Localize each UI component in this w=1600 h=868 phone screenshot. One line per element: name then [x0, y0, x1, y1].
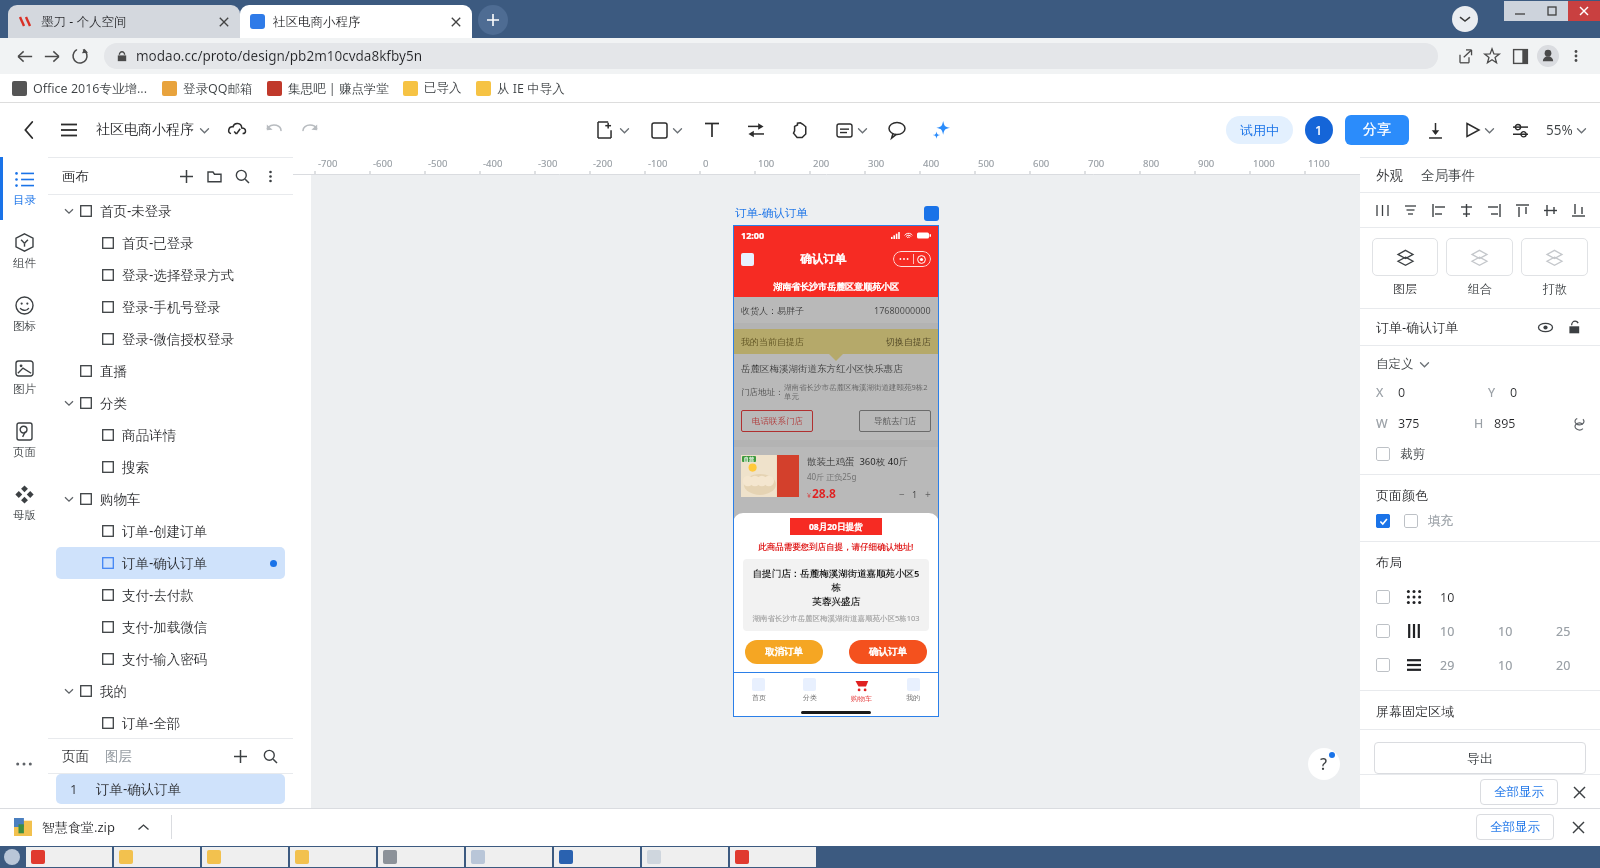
- button[interactable]: 电话联系门店: [741, 410, 813, 432]
- button[interactable]: Tab search: [1452, 6, 1478, 32]
- button[interactable]: 全部显示: [1494, 779, 1544, 805]
- button[interactable]: Window control: [1536, 1, 1568, 21]
- button[interactable]: Tool: [698, 116, 726, 144]
- button[interactable]: Close: [1570, 783, 1588, 801]
- button[interactable]: Align 2: [1428, 200, 1448, 220]
- button[interactable]: 分类: [784, 673, 835, 707]
- button[interactable]: 支付-输入密码: [56, 643, 285, 675]
- button[interactable]: 订单-创建订单: [56, 515, 285, 547]
- button[interactable]: 已导入: [403, 80, 462, 96]
- button[interactable]: 全部显示: [1490, 814, 1540, 840]
- button[interactable]: Office 2016专业增...: [12, 80, 148, 97]
- button[interactable]: 直播: [56, 355, 285, 387]
- button[interactable]: Checkbox: [1404, 514, 1418, 528]
- button[interactable]: Tool: [786, 116, 814, 144]
- button[interactable]: 登录-手机号登录: [56, 291, 285, 323]
- button[interactable]: 分类: [56, 387, 285, 419]
- button[interactable]: 图标: [0, 283, 48, 346]
- button[interactable]: 登录-选择登录方式: [56, 259, 285, 291]
- button[interactable]: Menu: [898, 251, 926, 267]
- button[interactable]: 登录QQ邮箱: [162, 80, 253, 97]
- button[interactable]: 墨刀 - 个人空间: [8, 5, 240, 38]
- button[interactable]: Tool: [830, 116, 858, 144]
- button[interactable]: Tool: [592, 116, 620, 144]
- button[interactable]: Close downloads: [1568, 817, 1588, 837]
- button[interactable]: Settings: [1508, 118, 1532, 142]
- button[interactable]: Back: [10, 42, 38, 70]
- button[interactable]: 导出: [1374, 742, 1586, 774]
- button[interactable]: 购物车: [56, 483, 285, 515]
- button[interactable]: [1521, 238, 1588, 276]
- button[interactable]: Reload: [66, 42, 94, 70]
- button[interactable]: 从 IE 中导入: [476, 80, 565, 97]
- button[interactable]: Add page: [231, 747, 249, 765]
- button[interactable]: Tool: [927, 116, 955, 144]
- button[interactable]: Align 0: [1372, 200, 1392, 220]
- button[interactable]: 登录-微信授权登录: [56, 323, 285, 355]
- button[interactable]: More: [261, 167, 279, 185]
- button[interactable]: Tool: [883, 116, 911, 144]
- button[interactable]: 首页: [733, 673, 784, 707]
- button[interactable]: 1: [70, 774, 271, 804]
- button[interactable]: New folder: [205, 167, 223, 185]
- button[interactable]: Align 7: [1568, 200, 1588, 220]
- button[interactable]: Visibility: [1536, 318, 1554, 336]
- button[interactable]: 订单-确认订单: [56, 547, 285, 579]
- button[interactable]: 我的: [887, 673, 939, 707]
- button[interactable]: Back: [14, 115, 44, 145]
- button[interactable]: Redo: [299, 119, 321, 141]
- button[interactable]: New tab: [478, 5, 508, 35]
- button[interactable]: Window control: [1568, 1, 1600, 21]
- button[interactable]: 购物车: [835, 673, 887, 707]
- button[interactable]: Checkbox: [1376, 447, 1390, 461]
- button[interactable]: 社区电商小程序: [240, 5, 472, 38]
- button[interactable]: Add: [177, 167, 195, 185]
- button[interactable]: 首页-已登录: [56, 227, 285, 259]
- button[interactable]: Link: [741, 253, 754, 266]
- button[interactable]: Search: [233, 167, 251, 185]
- button[interactable]: Checkbox: [1376, 514, 1390, 528]
- button[interactable]: 确认订单: [849, 640, 927, 664]
- button[interactable]: 试用中: [1240, 116, 1279, 144]
- button[interactable]: Align 4: [1484, 200, 1504, 220]
- button[interactable]: Align 5: [1512, 200, 1532, 220]
- button[interactable]: Share: [1450, 42, 1478, 70]
- button[interactable]: 支付-加载微信: [56, 611, 285, 643]
- button[interactable]: Bookmark: [1478, 42, 1506, 70]
- button[interactable]: Align 1: [1400, 200, 1420, 220]
- button[interactable]: Help: [1308, 748, 1340, 780]
- button[interactable]: 图片: [0, 346, 48, 409]
- button[interactable]: Undo: [263, 119, 285, 141]
- button[interactable]: 商品详情: [56, 419, 285, 451]
- button[interactable]: Align 6: [1540, 200, 1560, 220]
- button[interactable]: Profile: [1534, 42, 1562, 70]
- button[interactable]: 首页-未登录: [56, 195, 285, 227]
- button[interactable]: Download: [1423, 118, 1447, 142]
- button[interactable]: 取消订单: [745, 640, 823, 664]
- button[interactable]: Checkbox: [1376, 658, 1390, 672]
- button[interactable]: Lock: [1566, 318, 1584, 336]
- button[interactable]: 我的: [56, 675, 285, 707]
- button[interactable]: [1372, 238, 1438, 276]
- button[interactable]: Checkbox: [1376, 590, 1390, 604]
- button[interactable]: 页面: [0, 409, 48, 472]
- button[interactable]: 订单-全部: [56, 707, 285, 738]
- button[interactable]: Checkbox: [1376, 624, 1390, 638]
- button[interactable]: [1446, 238, 1513, 276]
- button[interactable]: 导航去门店: [859, 410, 931, 432]
- button[interactable]: Tool: [645, 116, 673, 144]
- button[interactable]: 分享: [1363, 115, 1391, 145]
- button[interactable]: Side panel: [1506, 42, 1534, 70]
- button[interactable]: Window control: [1504, 1, 1536, 21]
- button[interactable]: Expand: [133, 817, 153, 837]
- button[interactable]: 搜索: [56, 451, 285, 483]
- button[interactable]: Preview: [1461, 118, 1485, 142]
- button[interactable]: 组件: [0, 220, 48, 283]
- button[interactable]: More options: [1562, 42, 1590, 70]
- button[interactable]: Tool: [742, 116, 770, 144]
- button[interactable]: More: [4, 744, 44, 784]
- button[interactable]: Start page: [924, 206, 939, 221]
- button[interactable]: Align 3: [1456, 200, 1476, 220]
- button[interactable]: 目录: [0, 157, 48, 220]
- button[interactable]: Menu: [54, 115, 84, 145]
